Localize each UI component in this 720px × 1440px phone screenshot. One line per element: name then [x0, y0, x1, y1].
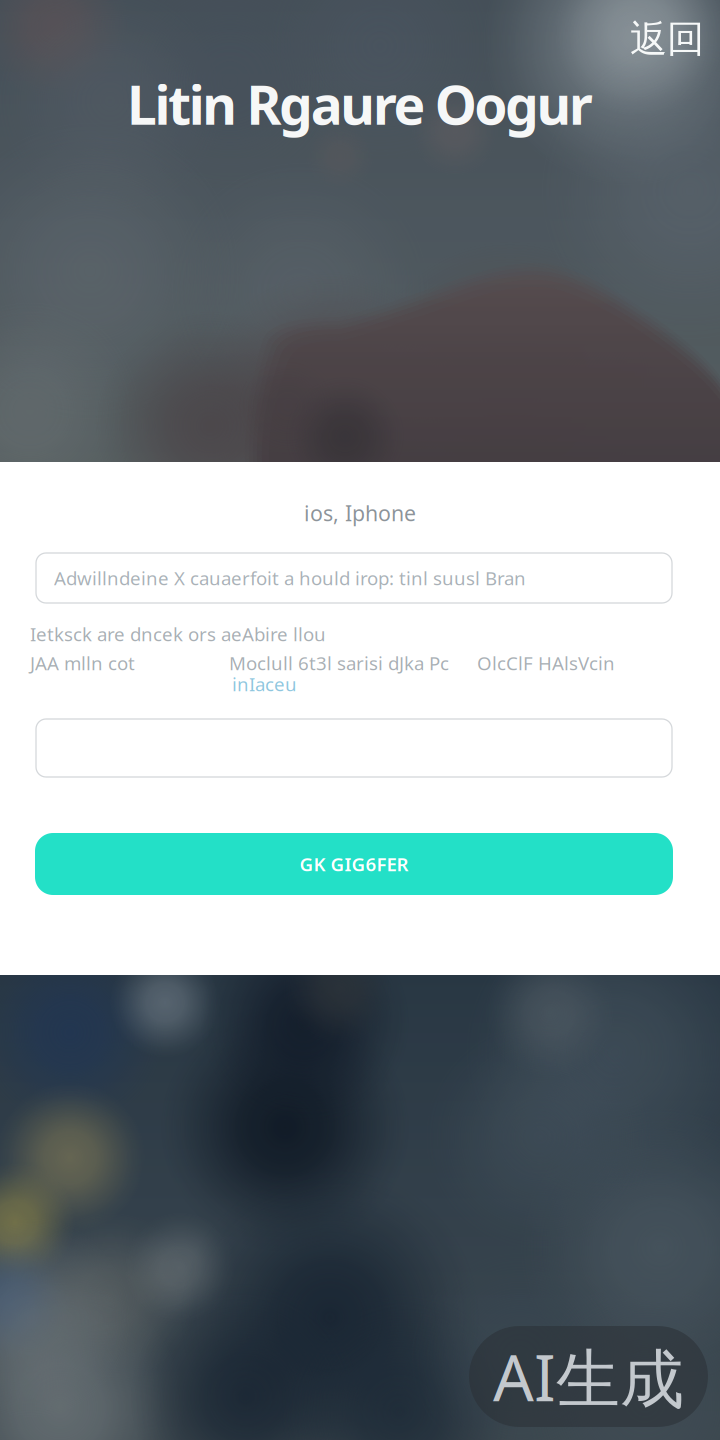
- staticText: Litin Rgaure Oogur: [127, 69, 593, 139]
- staticText: OlcClF HAlsVcin: [477, 651, 615, 675]
- staticText: Moclull 6t3l sarisi dJka Pc: [229, 651, 449, 675]
- button[interactable]: Adwillndeine X cauaerfoit a hould irop: …: [36, 553, 672, 603]
- button[interactable]: AI generated: [469, 1326, 708, 1427]
- button[interactable]: Back: [622, 10, 712, 68]
- staticText: ios, Iphone: [304, 499, 416, 527]
- staticText: inIaceu: [232, 672, 297, 696]
- button[interactable]: [36, 719, 672, 777]
- button[interactable]: inIaceu: [232, 672, 432, 696]
- button[interactable]: JAA mlln cot: [30, 651, 200, 675]
- button[interactable]: GK GIG6FER: [35, 833, 673, 895]
- staticText: Ietksck are dncek ors aeAbire llou: [30, 622, 326, 646]
- button[interactable]: Moclull 6t3l sarisi dJka Pc: [229, 651, 489, 675]
- staticText: 返回: [630, 16, 704, 62]
- staticText: GK GIG6FER: [299, 852, 408, 876]
- staticText: Adwillndeine X cauaerfoit a hould irop: …: [54, 566, 526, 590]
- staticText: AI生成: [493, 1334, 684, 1419]
- staticText: JAA mlln cot: [30, 651, 135, 675]
- button[interactable]: OlcClF HAlsVcin: [477, 651, 677, 675]
